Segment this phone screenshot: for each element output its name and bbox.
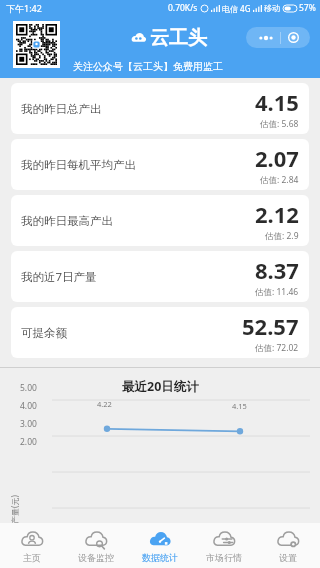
staticText: 3.00 bbox=[20, 418, 37, 430]
staticText: 设置 bbox=[279, 552, 297, 563]
staticText: 可提余额 bbox=[21, 326, 67, 340]
staticText: 市场行情 bbox=[206, 552, 242, 563]
staticText: 下午1:42 bbox=[6, 2, 42, 14]
staticText: 我的昨日每机平均产出 bbox=[21, 158, 136, 172]
staticText: 2.12 bbox=[255, 199, 299, 229]
button[interactable]: 我的昨日每机平均产出 bbox=[11, 139, 309, 190]
button[interactable]: 我的昨日最高产出 bbox=[11, 195, 309, 246]
button[interactable]: 设置 bbox=[256, 523, 320, 568]
staticText: 57% bbox=[299, 2, 316, 14]
staticText: 关注公众号【云工头】免费用监工 bbox=[73, 60, 223, 73]
staticText: 2.07 bbox=[255, 143, 299, 173]
staticText: 我的近7日产量 bbox=[21, 269, 97, 285]
staticText: 估值: 2.9 bbox=[265, 230, 299, 242]
staticText: 估值: 11.46 bbox=[255, 286, 299, 298]
staticText: 我的昨日最高产出 bbox=[21, 214, 113, 228]
staticText: 最近20日统计 bbox=[122, 378, 199, 395]
staticText: 移动 bbox=[264, 3, 280, 13]
staticText: 产量(元) bbox=[9, 495, 20, 524]
staticText: 5.00 bbox=[20, 382, 37, 394]
button[interactable]: 我的近7日产量 bbox=[11, 251, 309, 302]
staticText: 4.15 bbox=[232, 401, 247, 411]
button[interactable]: 数据统计 bbox=[128, 523, 192, 568]
staticText: 4.15 bbox=[255, 87, 299, 117]
staticText: 电信 4G bbox=[222, 3, 251, 14]
staticText: 52.57 bbox=[242, 311, 299, 341]
button[interactable]: 设备监控 bbox=[64, 523, 128, 568]
button[interactable]: 关闭 bbox=[286, 30, 301, 45]
staticText: 我的昨日总产出 bbox=[21, 102, 102, 116]
button[interactable]: 更多 bbox=[255, 32, 277, 44]
staticText: 主页 bbox=[23, 552, 41, 563]
staticText: 数据统计 bbox=[142, 552, 178, 563]
staticText: 0.70K/s bbox=[168, 2, 198, 14]
staticText: 设备监控 bbox=[78, 552, 114, 563]
staticText: 2.00 bbox=[20, 436, 37, 448]
staticText: 4.22 bbox=[97, 399, 112, 409]
staticText: 估值: 5.68 bbox=[260, 118, 299, 130]
button[interactable]: 可提余额 bbox=[11, 307, 309, 358]
staticText: 云工头 bbox=[150, 26, 207, 50]
button[interactable]: 主页 bbox=[0, 523, 64, 568]
staticText: 8.37 bbox=[255, 255, 299, 285]
button[interactable]: 市场行情 bbox=[192, 523, 256, 568]
staticText: 4.00 bbox=[20, 400, 37, 412]
staticText: 估值: 72.02 bbox=[255, 342, 299, 354]
staticText: 估值: 2.84 bbox=[260, 174, 299, 186]
button[interactable]: 我的昨日总产出 bbox=[11, 83, 309, 134]
